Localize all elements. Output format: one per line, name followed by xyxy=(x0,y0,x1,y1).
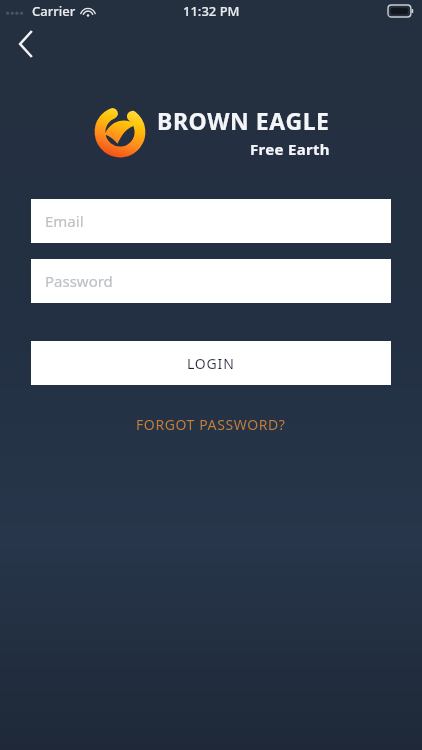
staticText: 11:32 PM xyxy=(183,2,240,20)
staticText: Carrier xyxy=(32,2,76,20)
button[interactable]: Password xyxy=(31,259,391,303)
staticText: LOGIN xyxy=(187,354,235,373)
button[interactable]: FORGOT PASSWORD? xyxy=(122,409,300,440)
staticText: Password xyxy=(45,271,113,291)
staticText: Email xyxy=(45,211,84,231)
staticText: BROWN EAGLE xyxy=(157,105,330,136)
button[interactable]: Back xyxy=(4,22,48,66)
button[interactable]: LOGIN xyxy=(31,341,391,385)
staticText: FORGOT PASSWORD? xyxy=(136,415,286,434)
button[interactable]: Email xyxy=(31,199,391,243)
staticText: Free Earth xyxy=(250,139,330,159)
